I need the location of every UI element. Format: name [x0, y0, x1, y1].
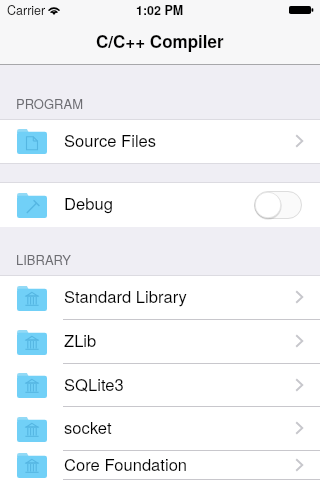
staticText: Source Files [64, 128, 157, 152]
button[interactable]: Debug [0, 183, 320, 227]
staticText: ZLib [64, 328, 97, 352]
staticText: 1:02 PM [136, 1, 184, 19]
staticText: Standard Library [64, 284, 187, 308]
button[interactable]: Source Files [0, 120, 320, 163]
button[interactable]: Standard Library [0, 276, 320, 320]
staticText: Carrier [7, 1, 46, 19]
staticText: socket [64, 415, 112, 439]
staticText: PROGRAM [16, 94, 83, 113]
button[interactable]: socket [0, 407, 320, 451]
staticText: LIBRARY [16, 250, 72, 269]
staticText: Debug [64, 191, 113, 215]
button[interactable]: ZLib [0, 320, 320, 364]
staticText: C/C++ Compiler [96, 29, 224, 53]
button[interactable]: SQLite3 [0, 364, 320, 407]
button[interactable]: Core Foundation [0, 451, 320, 480]
staticText: Core Foundation [64, 452, 188, 476]
staticText: SQLite3 [64, 372, 124, 396]
button[interactable]: Debug toggle [254, 191, 302, 219]
